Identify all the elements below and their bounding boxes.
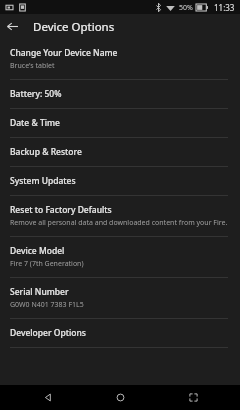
- staticText: 50%: [179, 3, 193, 13]
- staticText: Change Your Device Name: [10, 47, 118, 59]
- button[interactable]: Battery: 50%: [0, 80, 240, 108]
- button[interactable]: Reset to Factory Defaults: [0, 196, 240, 236]
- staticText: Backup & Restore: [10, 146, 82, 158]
- button[interactable]: Device Model: [0, 237, 240, 277]
- button[interactable]: Recent apps: [168, 385, 218, 410]
- staticText: Date & Time: [10, 117, 60, 129]
- staticText: Fire 7 (7th Generation): [10, 259, 84, 269]
- staticText: Device Options: [33, 19, 115, 35]
- staticText: Serial Number: [10, 286, 69, 298]
- staticText: Reset to Factory Defaults: [10, 204, 112, 216]
- button[interactable]: Date & Time: [0, 109, 240, 137]
- button[interactable]: Serial Number: [0, 278, 240, 318]
- staticText: Developer Options: [10, 327, 86, 339]
- staticText: Battery: 50%: [10, 88, 62, 100]
- button[interactable]: Home: [95, 385, 145, 410]
- staticText: Device Model: [10, 245, 65, 257]
- staticText: G0W0 N401 7383 F1L5: [10, 300, 84, 310]
- staticText: Remove all personal data and downloaded …: [10, 218, 228, 228]
- button[interactable]: Developer Options: [0, 319, 240, 347]
- button[interactable]: Change Your Device Name: [0, 39, 240, 79]
- staticText: System Updates: [10, 175, 76, 187]
- button[interactable]: Back: [0, 14, 25, 39]
- staticText: 11:33: [214, 2, 235, 13]
- button[interactable]: Backup & Restore: [0, 138, 240, 166]
- button[interactable]: System Updates: [0, 167, 240, 195]
- button[interactable]: Back: [23, 385, 73, 410]
- staticText: Bruce's tablet: [10, 61, 55, 71]
